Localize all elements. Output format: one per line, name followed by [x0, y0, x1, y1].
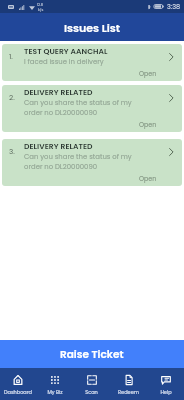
staticText: Can you share the status of my — [24, 152, 132, 162]
staticText: Issues List — [64, 20, 121, 35]
staticText: Open — [139, 120, 157, 129]
staticText: 1. — [9, 51, 24, 61]
button[interactable]: 1. — [2, 44, 182, 81]
staticText: DELIVERY RELATED — [24, 141, 93, 152]
staticText: 2. — [9, 92, 24, 102]
button[interactable]: 2. — [2, 85, 182, 132]
staticText: Dashboard — [4, 389, 32, 396]
staticText: TEST QUERY AANCHAL — [24, 46, 108, 57]
staticText: order no DL20000090 — [24, 162, 98, 172]
staticText: DELIVERY RELATED — [24, 87, 93, 98]
staticText: 3. — [9, 146, 24, 156]
button[interactable]: Redeem — [110, 368, 147, 400]
staticText: Open — [139, 69, 157, 78]
button[interactable]: Help — [147, 368, 184, 400]
button[interactable]: Raise Ticket — [0, 340, 184, 368]
staticText: 12.8 — [37, 2, 44, 7]
staticText: 3:38 — [167, 2, 181, 11]
button[interactable]: Scan — [73, 368, 110, 400]
staticText: order no DL20000090 — [24, 108, 98, 118]
staticText: Can you share the status of my — [24, 98, 132, 108]
button[interactable]: My Biz — [36, 368, 73, 400]
button[interactable]: 3. — [2, 139, 182, 186]
button[interactable]: Dashboard — [0, 368, 36, 400]
staticText: Scan — [85, 389, 98, 396]
staticText: I faced issue in delivery — [24, 57, 104, 67]
staticText: Open — [139, 174, 157, 183]
staticText: My Biz — [47, 389, 63, 396]
staticText: k/s — [38, 7, 44, 12]
staticText: Redeem — [118, 389, 139, 396]
staticText: Help — [160, 389, 172, 396]
staticText: Raise Ticket — [60, 347, 124, 362]
